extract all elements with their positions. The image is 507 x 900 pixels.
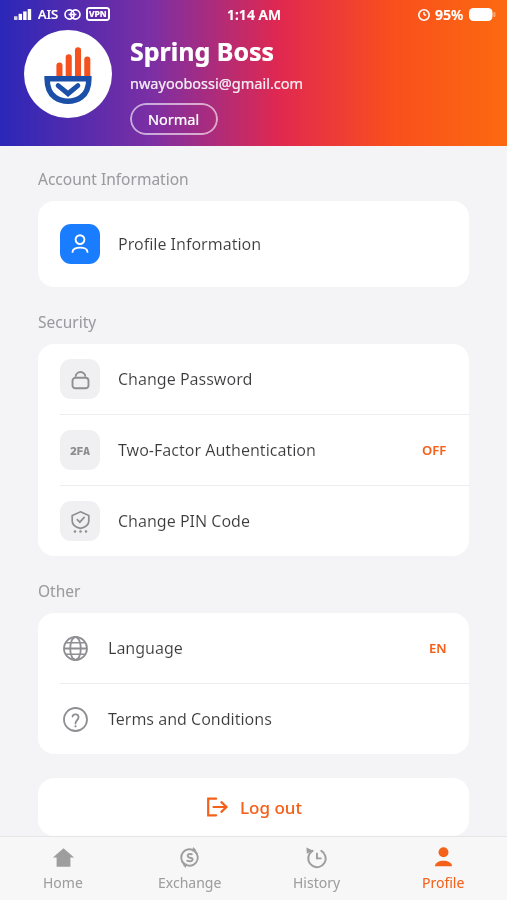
staticText: 1:14 AM	[227, 5, 281, 24]
staticText: Profile	[422, 873, 465, 892]
button[interactable]: Normal	[130, 103, 218, 135]
button[interactable]: Profile Information	[38, 201, 469, 287]
staticText: Other	[38, 580, 81, 601]
button[interactable]: Profile	[380, 840, 507, 898]
staticText: Normal	[148, 109, 200, 129]
staticText: 95%	[435, 5, 464, 24]
button[interactable]: Change Password	[38, 344, 469, 414]
staticText: History	[293, 873, 341, 892]
staticText: Spring Boss	[130, 34, 275, 68]
button[interactable]: Profile avatar	[24, 30, 112, 118]
button[interactable]: 2FA	[38, 415, 469, 485]
staticText: EN	[429, 639, 447, 657]
staticText: Security	[38, 311, 97, 332]
button[interactable]: History	[253, 840, 380, 898]
staticText: OFF	[422, 441, 447, 459]
staticText: Terms and Conditions	[108, 708, 447, 730]
button[interactable]: Log out	[38, 778, 469, 836]
staticText: Profile Information	[118, 233, 447, 255]
button[interactable]: Home	[0, 840, 126, 898]
staticText: Change Password	[118, 368, 447, 390]
staticText: Change PIN Code	[118, 510, 447, 532]
staticText: Account Information	[38, 168, 189, 189]
staticText: Exchange	[158, 873, 222, 892]
button[interactable]: Change PIN Code	[38, 486, 469, 556]
staticText: Log out	[240, 796, 302, 819]
button[interactable]: Terms and Conditions	[38, 684, 469, 754]
staticText: Home	[43, 873, 83, 892]
staticText: nwayoobossi@gmail.com	[130, 73, 304, 93]
staticText: Two-Factor Authentication	[118, 439, 422, 461]
staticText: Language	[108, 637, 429, 659]
staticText: AIS	[38, 5, 59, 23]
button[interactable]: Language	[38, 613, 469, 683]
staticText: 2FA	[70, 443, 90, 458]
button[interactable]: Exchange	[126, 840, 253, 898]
staticText: VPN	[89, 8, 107, 20]
